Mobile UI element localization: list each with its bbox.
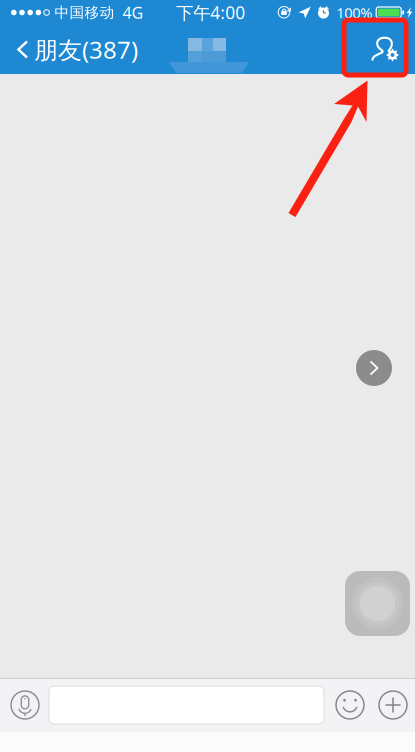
staticText: 朋友(387) bbox=[34, 34, 138, 65]
button[interactable]: Emoji bbox=[335, 690, 365, 720]
staticText: 100% bbox=[336, 3, 372, 22]
staticText: 下午4:00 bbox=[176, 1, 245, 24]
button[interactable]: Message bbox=[49, 686, 324, 724]
button[interactable]: Scroll to latest bbox=[356, 350, 392, 386]
staticText: 4G bbox=[122, 2, 143, 23]
button[interactable]: Voice message bbox=[10, 690, 40, 720]
staticText: 中国移动 bbox=[54, 3, 114, 21]
button[interactable]: More bbox=[378, 690, 408, 720]
button[interactable]: 朋友(387) bbox=[0, 25, 148, 74]
button[interactable]: Manage friends bbox=[355, 25, 415, 74]
